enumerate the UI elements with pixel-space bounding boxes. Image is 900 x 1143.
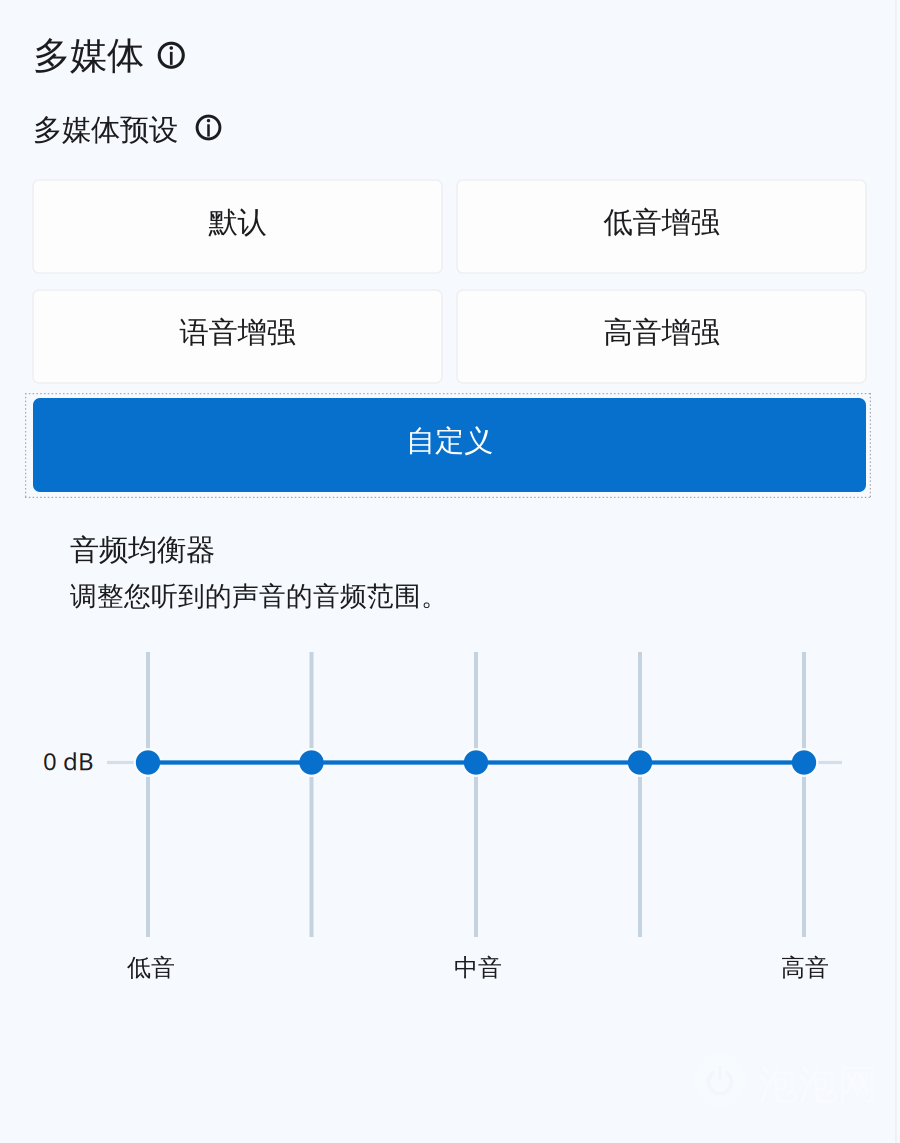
- staticText: 多媒体: [33, 33, 144, 79]
- staticText: 默认: [208, 204, 266, 240]
- button[interactable]: 默认: [33, 180, 442, 273]
- button[interactable]: 低音增强: [457, 180, 866, 273]
- button[interactable]: 自定义: [33, 398, 866, 492]
- button[interactable]: 关于多媒体: [156, 40, 186, 70]
- staticText: 低音增强: [603, 204, 719, 240]
- button[interactable]: 低音 0 dB: [136, 750, 160, 775]
- staticText: 多媒体预设: [33, 112, 178, 148]
- button[interactable]: 语音增强: [33, 290, 442, 383]
- button[interactable]: 中音 0 dB: [464, 750, 488, 775]
- staticText: 高音增强: [603, 314, 719, 350]
- staticText: 0 dB: [43, 745, 94, 777]
- staticText: 调整您听到的声音的音频范围。: [70, 580, 448, 613]
- staticText: 高音: [781, 953, 829, 982]
- button[interactable]: 中低音 0 dB: [299, 750, 324, 775]
- staticText: 语音增强: [179, 314, 295, 350]
- staticText: 自定义: [406, 423, 493, 459]
- staticText: 音频均衡器: [70, 532, 215, 568]
- staticText: 中音: [454, 953, 502, 982]
- button[interactable]: 关于多媒体预设: [194, 113, 222, 141]
- staticText: 低音: [127, 953, 175, 982]
- button[interactable]: 高音 0 dB: [792, 750, 816, 775]
- button[interactable]: 中高音 0 dB: [628, 750, 652, 775]
- button[interactable]: 高音增强: [457, 290, 866, 383]
